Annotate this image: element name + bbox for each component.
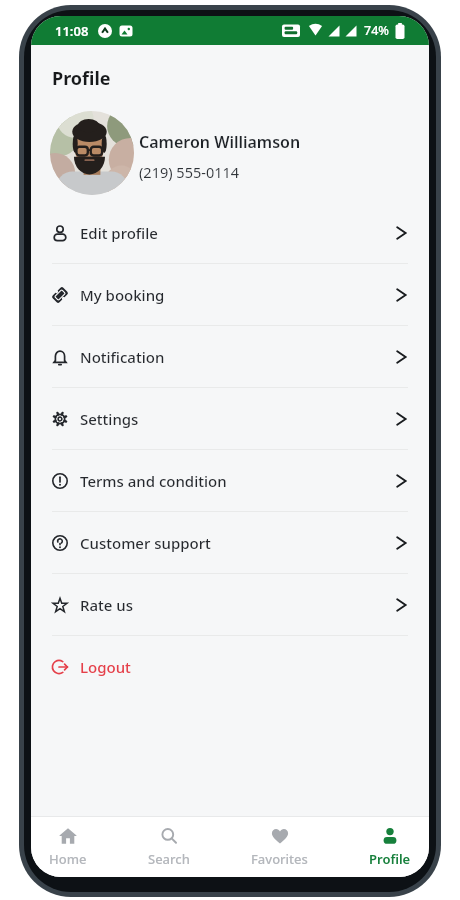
- staticText: Home: [49, 850, 87, 868]
- staticText: Favorites: [251, 850, 308, 868]
- staticText: 74%: [364, 22, 389, 39]
- button[interactable]: Logout: [31, 636, 429, 697]
- staticText: Customer support: [80, 533, 211, 553]
- staticText: 11:08: [55, 22, 89, 40]
- staticText: Profile: [52, 66, 111, 91]
- button[interactable]: Profile: [369, 825, 411, 868]
- button[interactable]: Customer support: [31, 512, 429, 573]
- button[interactable]: My booking: [31, 264, 429, 325]
- staticText: Edit profile: [80, 223, 158, 243]
- button[interactable]: Favorites: [251, 825, 308, 868]
- staticText: Logout: [80, 657, 131, 677]
- button[interactable]: Home: [49, 825, 87, 868]
- staticText: Settings: [80, 409, 139, 429]
- staticText: Cameron Williamson: [139, 131, 301, 153]
- staticText: Notification: [80, 347, 165, 367]
- staticText: Terms and condition: [80, 471, 227, 491]
- button[interactable]: Notification: [31, 326, 429, 387]
- button[interactable]: Search: [148, 825, 190, 868]
- button[interactable]: Terms and condition: [31, 450, 429, 511]
- staticText: Search: [148, 850, 190, 868]
- button[interactable]: Settings: [31, 388, 429, 449]
- staticText: (219) 555-0114: [139, 162, 240, 182]
- staticText: Profile: [369, 850, 411, 868]
- button[interactable]: Edit profile: [31, 202, 429, 263]
- staticText: Rate us: [80, 595, 134, 615]
- staticText: My booking: [80, 285, 165, 305]
- button[interactable]: Rate us: [31, 574, 429, 635]
